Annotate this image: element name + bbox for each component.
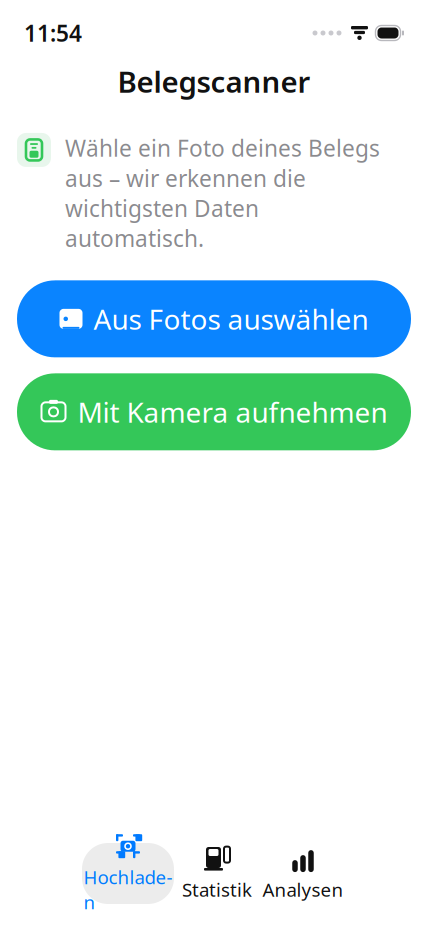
staticText: Hochladen bbox=[83, 865, 172, 914]
button[interactable]: Aus Fotos auswählen bbox=[17, 280, 411, 357]
staticText: Belegscanner bbox=[117, 62, 310, 101]
staticText: Analysen bbox=[262, 877, 343, 902]
button[interactable]: Statistik bbox=[174, 843, 260, 904]
button[interactable]: Mit Kamera aufnehmen bbox=[17, 373, 411, 450]
staticText: 11:54 bbox=[24, 18, 82, 48]
button[interactable]: Analysen bbox=[260, 843, 346, 904]
staticText: Aus Fotos auswählen bbox=[93, 300, 368, 337]
staticText: Statistik bbox=[182, 877, 252, 902]
button[interactable]: Hochladen bbox=[82, 843, 174, 904]
staticText: Mit Kamera aufnehmen bbox=[77, 393, 387, 430]
staticText: Wähle ein Foto deines Belegs aus – wir e… bbox=[65, 133, 380, 253]
